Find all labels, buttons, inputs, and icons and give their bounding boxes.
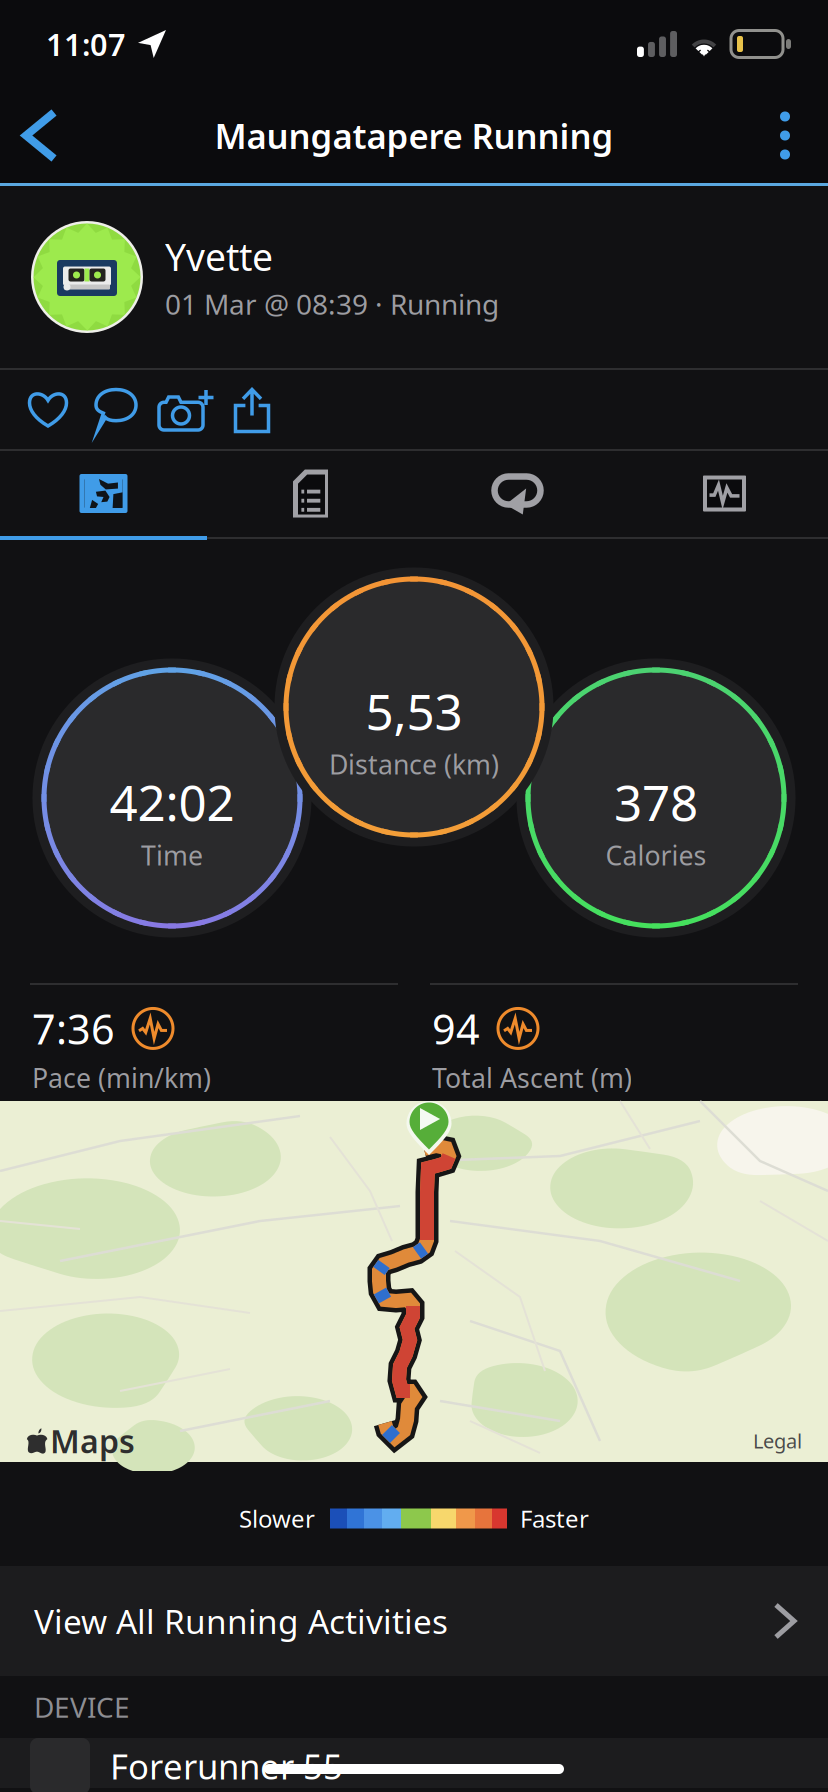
staticText: Forerunner 55 xyxy=(110,1743,343,1789)
staticText: Faster xyxy=(520,1503,589,1534)
staticText: Slower xyxy=(239,1503,315,1534)
staticText: Distance (km) xyxy=(329,746,499,782)
staticText: 378 xyxy=(614,769,698,834)
button[interactable]: Back xyxy=(0,90,90,180)
button[interactable]: Map xyxy=(0,451,207,536)
button[interactable]: Charts xyxy=(621,451,828,536)
button[interactable]: View All Running Activities xyxy=(0,1566,828,1676)
button[interactable]: Comment xyxy=(82,370,150,449)
staticText: 11:07 xyxy=(46,24,126,64)
staticText: 5,53 xyxy=(365,678,462,743)
staticText: Legal xyxy=(753,1427,802,1454)
staticText: Total Ascent (m) xyxy=(432,1060,632,1095)
button[interactable]: Share xyxy=(218,370,286,449)
staticText: Calories xyxy=(605,837,706,873)
staticText: Time xyxy=(141,837,203,873)
staticText: 7:36 xyxy=(32,1001,115,1056)
staticText: 01 Mar @ 08:39 · Running xyxy=(165,285,499,322)
staticText: 94 xyxy=(432,1001,480,1056)
button[interactable]: Like xyxy=(14,370,82,449)
staticText: Yvette xyxy=(165,232,273,281)
staticText: Maps xyxy=(50,1419,135,1462)
staticText: Pace (min/km) xyxy=(32,1060,211,1095)
staticText: Maungatapere Running xyxy=(214,112,613,158)
button[interactable]: Details xyxy=(207,451,414,536)
button[interactable]: More options xyxy=(742,89,828,181)
button[interactable]: Add photo xyxy=(150,370,218,449)
button[interactable]: Laps xyxy=(414,451,621,536)
staticText: DEVICE xyxy=(34,1688,130,1726)
staticText: 42:02 xyxy=(109,769,234,834)
staticText: View All Running Activities xyxy=(34,1599,448,1643)
